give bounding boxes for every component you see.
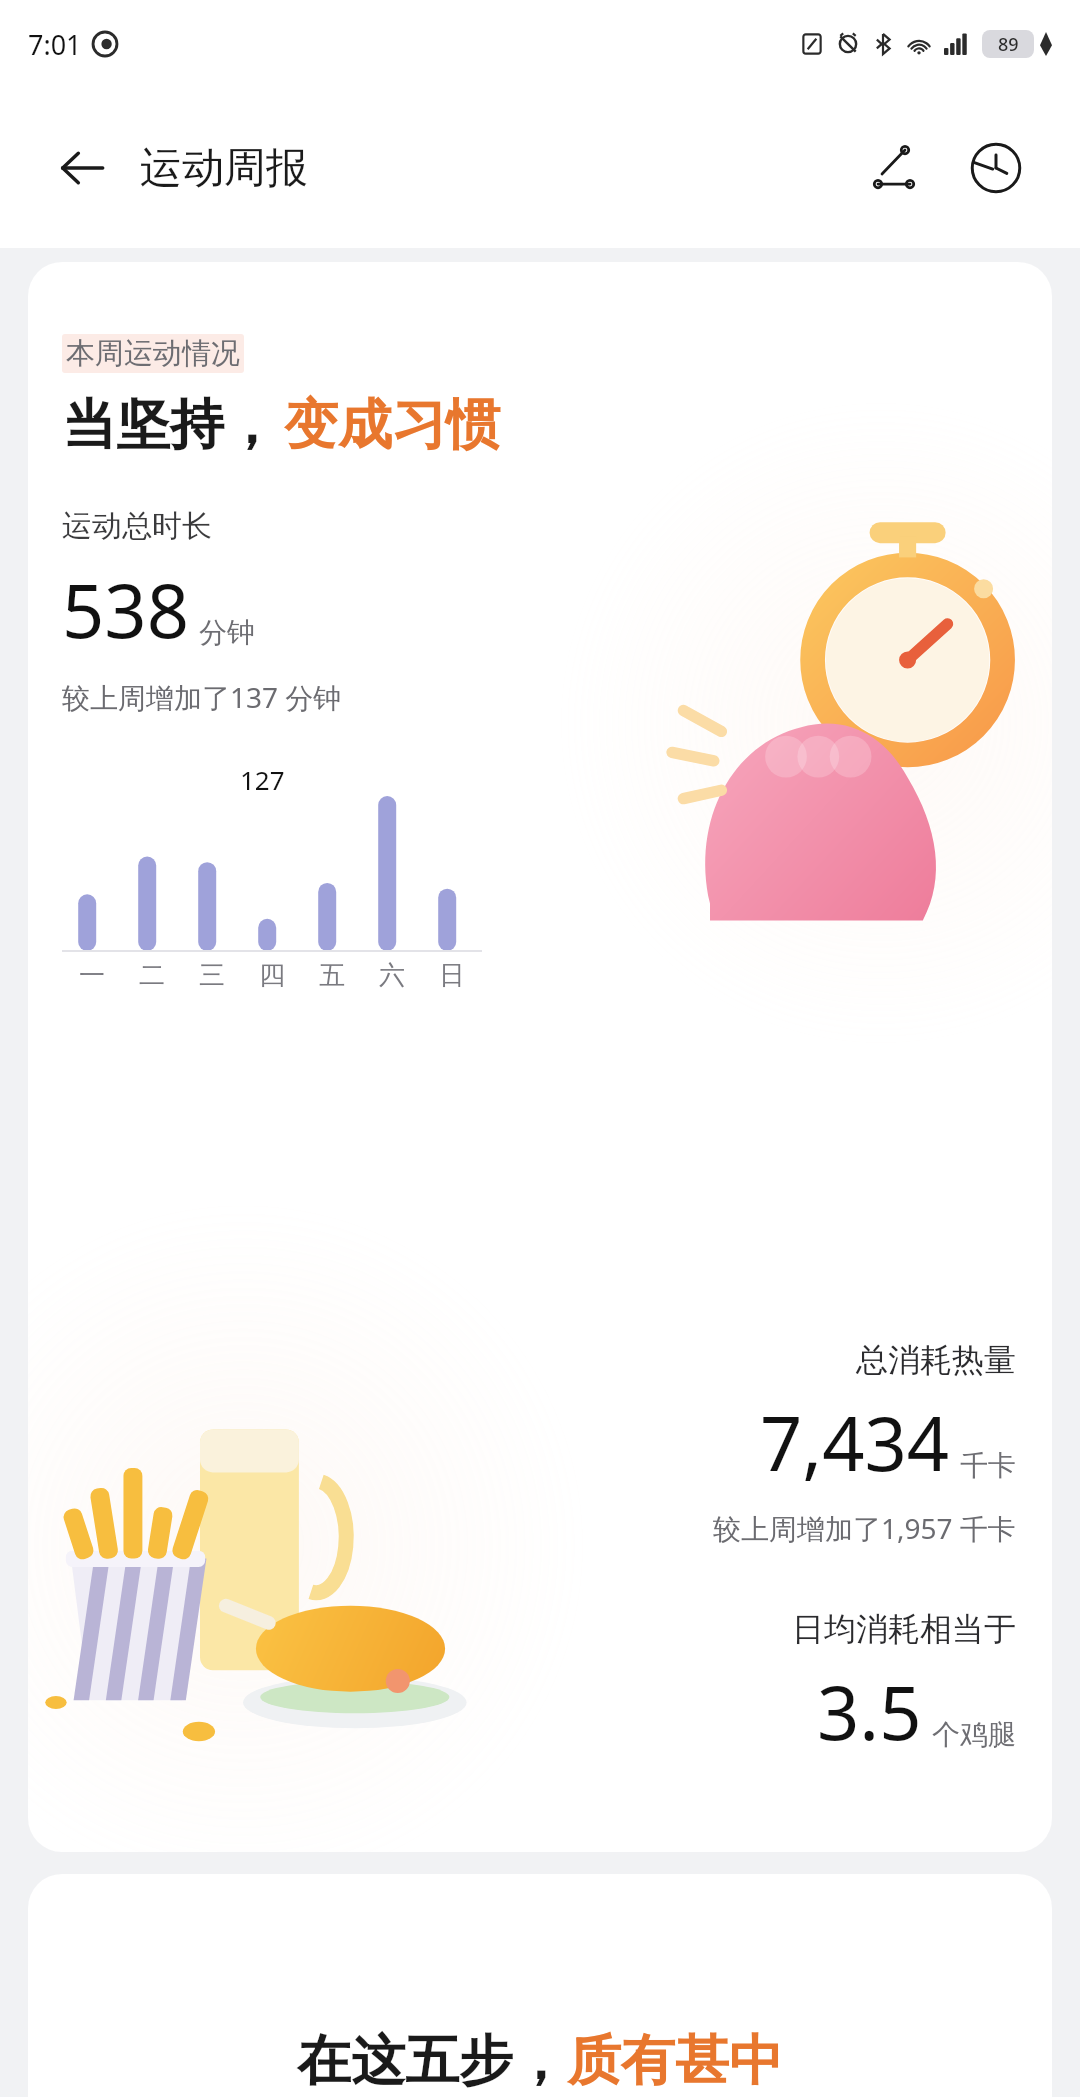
- button[interactable]: History: [960, 132, 1032, 204]
- staticText: 日: [439, 959, 465, 992]
- staticText: 7,434: [760, 1392, 950, 1493]
- staticText: 127: [240, 762, 285, 797]
- staticText: 五: [319, 959, 345, 992]
- staticText: 六: [379, 959, 405, 992]
- staticText: 分钟: [199, 615, 255, 650]
- staticText: 四: [259, 959, 285, 992]
- staticText: 运动总时长: [62, 507, 212, 545]
- staticText: 三: [199, 959, 225, 992]
- staticText: 在这五步，: [297, 2027, 567, 2095]
- staticText: 较上周增加了1,957 千卡: [713, 1509, 1016, 1547]
- button[interactable]: 在这五步，: [28, 1874, 1052, 2097]
- staticText: 7:01: [28, 26, 82, 63]
- staticText: 538: [62, 559, 189, 660]
- button[interactable]: Back: [48, 134, 116, 202]
- staticText: 较上周增加了137 分钟: [62, 678, 342, 716]
- staticText: 千卡: [960, 1448, 1016, 1483]
- staticText: 89: [998, 32, 1019, 57]
- staticText: 本周运动情况: [66, 335, 240, 372]
- staticText: 3.5: [817, 1661, 922, 1762]
- staticText: 个鸡腿: [932, 1717, 1016, 1752]
- staticText: 总消耗热量: [856, 1340, 1016, 1380]
- staticText: 当坚持，: [62, 391, 278, 459]
- staticText: 日均消耗相当于: [792, 1609, 1016, 1649]
- staticText: 二: [139, 959, 165, 992]
- button[interactable]: Share: [858, 132, 930, 204]
- button[interactable]: 本周运动情况: [28, 262, 1052, 1852]
- staticText: 一: [79, 959, 105, 992]
- staticText: 运动周报: [140, 142, 308, 195]
- staticText: 变成习惯: [284, 391, 500, 459]
- staticText: 质有甚中: [567, 2027, 783, 2095]
